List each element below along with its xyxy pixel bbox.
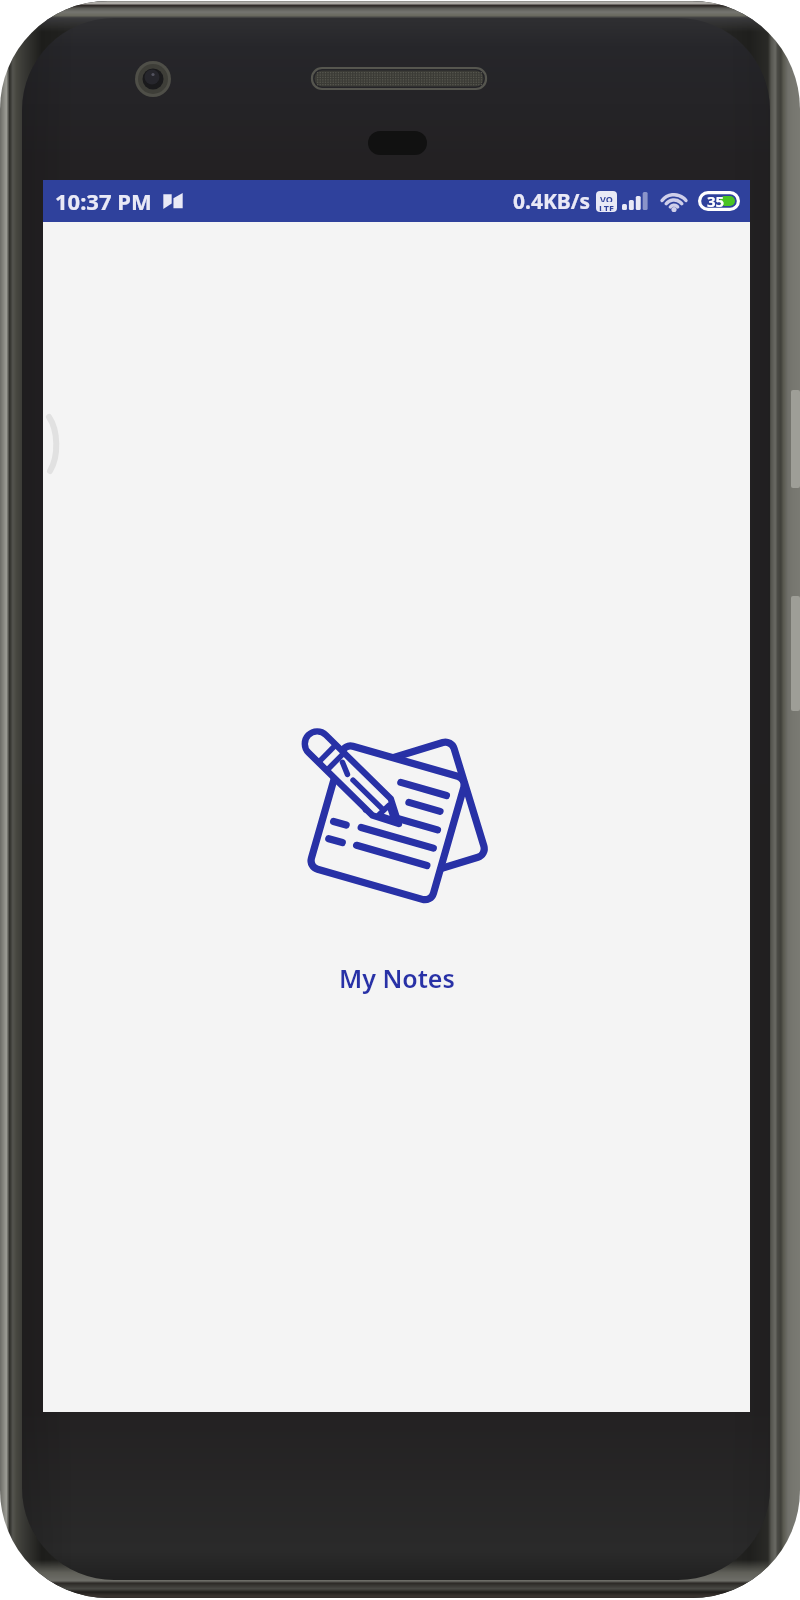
staticText: 35: [707, 191, 725, 211]
staticText: 10:37 PM: [55, 186, 152, 216]
staticText: VO: [600, 193, 613, 202]
staticText: My Notes: [339, 961, 455, 995]
staticText: LTE: [599, 202, 615, 211]
staticText: 0.4KB/s: [513, 187, 591, 216]
